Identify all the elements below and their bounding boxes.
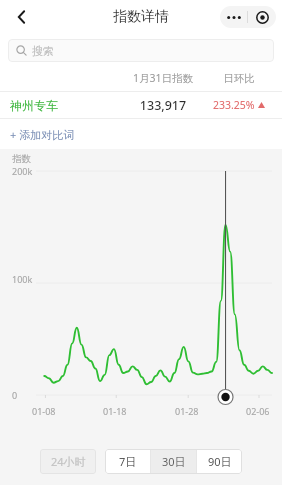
button[interactable]: 30日: [151, 449, 196, 474]
button[interactable]: 搜索: [8, 39, 274, 62]
staticText: 01-28: [175, 405, 199, 417]
staticText: 指数详情: [113, 8, 169, 26]
staticText: 搜索: [32, 44, 54, 58]
staticText: 133,917: [120, 97, 206, 114]
button[interactable]: 90日: [197, 449, 242, 474]
button[interactable]: 24小时: [40, 449, 96, 474]
staticText: 神州专车: [10, 98, 58, 113]
staticText: 200k: [12, 165, 33, 177]
button[interactable]: More options: [220, 6, 247, 28]
staticText: 日环比: [206, 72, 272, 85]
staticText: 7日: [119, 454, 137, 469]
staticText: 30日: [162, 454, 186, 469]
staticText: 01-08: [32, 405, 56, 417]
staticText: + 添加对比词: [10, 127, 75, 142]
button[interactable]: Close: [248, 6, 276, 28]
button[interactable]: 神州专车: [0, 92, 282, 118]
staticText: 100k: [12, 273, 33, 285]
staticText: 指数: [12, 153, 31, 165]
staticText: 24小时: [51, 454, 86, 469]
button[interactable]: Back: [6, 1, 38, 33]
staticText: 02-06: [246, 405, 270, 417]
staticText: 90日: [208, 454, 232, 469]
staticText: 1月31日指数: [120, 71, 206, 85]
staticText: 01-18: [103, 405, 127, 417]
button[interactable]: 7日: [105, 449, 150, 474]
staticText: 233.25%: [213, 98, 255, 112]
button[interactable]: + 添加对比词: [0, 119, 282, 149]
staticText: 0: [12, 389, 18, 401]
